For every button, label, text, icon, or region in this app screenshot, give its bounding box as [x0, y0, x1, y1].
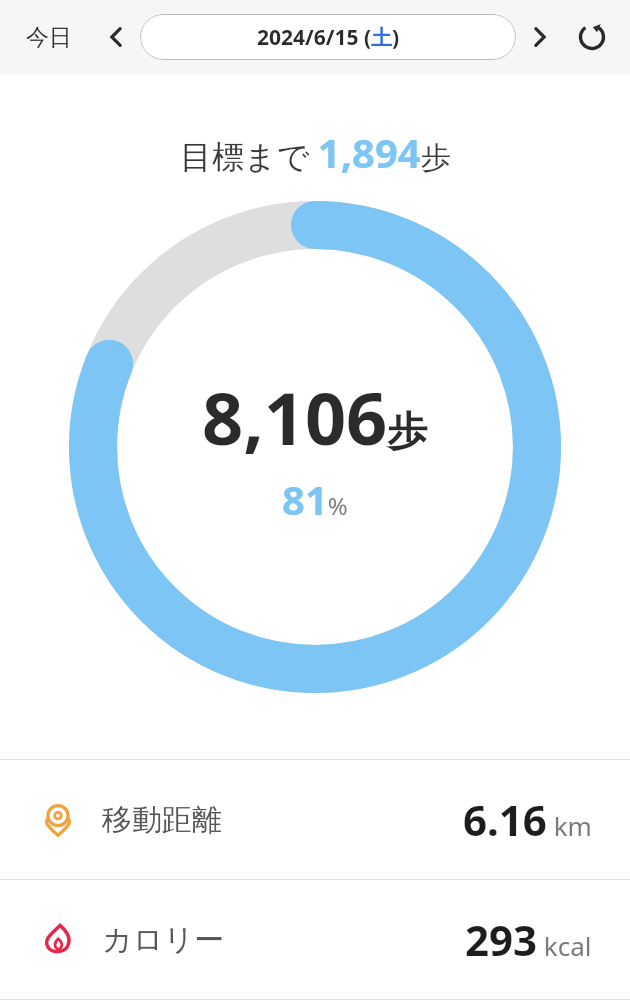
staticText: 81% — [282, 472, 348, 526]
staticText: 8,106歩 — [202, 368, 428, 466]
button[interactable]: Previous day — [96, 17, 136, 57]
button[interactable]: Next day — [520, 17, 560, 57]
other: Distance — [41, 803, 75, 837]
staticText: カロリー — [102, 921, 225, 959]
staticText: 2024/6/15 (土) — [257, 23, 400, 52]
button[interactable]: 今日 — [16, 17, 82, 58]
button[interactable]: Calories — [0, 880, 630, 999]
button[interactable]: Distance — [0, 760, 630, 879]
staticText: 6.16 km — [463, 791, 592, 848]
staticText: 移動距離 — [102, 801, 222, 839]
other: Calories — [41, 923, 75, 957]
button[interactable]: 2024/6/15 (土) — [140, 14, 516, 60]
staticText: 今日 — [26, 23, 72, 52]
staticText: 293 kcal — [465, 911, 592, 968]
staticText: 目標まで 1,894歩 — [180, 125, 451, 179]
button[interactable]: Refresh — [570, 15, 614, 59]
